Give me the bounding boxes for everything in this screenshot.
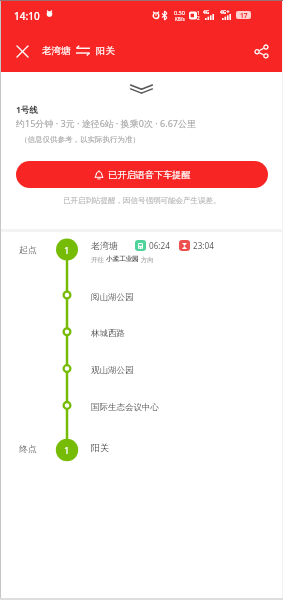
staticText: 已开启到站提醒，因信号强弱可能会产生误差。: [63, 196, 221, 205]
staticText: 14:10: [14, 9, 40, 23]
staticText: （信息仅供参考，以实际执行为准）: [20, 135, 140, 144]
staticText: 终点: [19, 443, 37, 454]
staticText: 23:04: [193, 240, 214, 251]
button[interactable]: Share: [248, 38, 274, 64]
staticText: 4G: [203, 9, 210, 16]
staticText: 0.50: [174, 9, 185, 16]
button[interactable]: 已开启语音下车提醒: [16, 161, 268, 188]
staticText: 2: [197, 15, 200, 21]
staticText: 1: [64, 244, 70, 257]
staticText: 阅山湖公园: [91, 292, 134, 303]
staticText: 小孟工业园: [106, 255, 139, 263]
staticText: 阳关: [91, 442, 109, 453]
staticText: 阳关: [96, 45, 115, 57]
button[interactable]: 老湾塘: [42, 38, 115, 63]
staticText: KB/s: [175, 16, 185, 22]
staticText: 观山湖公园: [91, 365, 134, 376]
staticText: 方向: [139, 255, 154, 264]
staticText: 06:24: [149, 240, 170, 251]
staticText: 开往: [91, 255, 106, 264]
staticText: 已开启语音下车提醒: [108, 169, 191, 181]
staticText: 老湾塘: [42, 45, 71, 57]
staticText: 老湾塘: [91, 240, 118, 251]
staticText: 林城西路: [91, 328, 125, 339]
button[interactable]: Close: [9, 38, 35, 64]
staticText: 1号线: [16, 104, 38, 116]
staticText: 1: [64, 444, 70, 457]
button[interactable]: Collapse: [0, 80, 283, 98]
staticText: 4G+: [220, 9, 230, 16]
staticText: 1: [197, 10, 200, 16]
staticText: 17: [240, 11, 248, 19]
staticText: 约15分钟 · 3元 · 途径6站 · 换乘0次 · 6.67公里: [16, 117, 196, 129]
staticText: 起点: [19, 244, 37, 255]
staticText: 国际生态会议中心: [91, 402, 159, 413]
